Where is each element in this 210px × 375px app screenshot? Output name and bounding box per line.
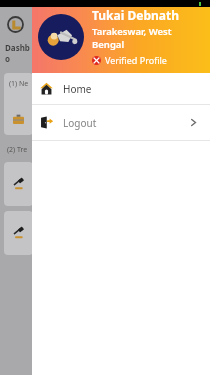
- button[interactable]: Home: [32, 73, 210, 104]
- staticText: Dashbo: [5, 42, 33, 64]
- other: Profile photo: [38, 14, 84, 60]
- staticText: Verified Profile: [105, 54, 167, 66]
- staticText: Tukai Debnath: [92, 7, 179, 23]
- staticText: (1) Ne: [9, 79, 29, 89]
- staticText: Home: [63, 82, 92, 96]
- staticText: Logout: [63, 116, 189, 130]
- button[interactable]: Profile photo: [32, 0, 210, 73]
- staticText: (2) Tre: [7, 145, 28, 155]
- staticText: Tarakeswar, West Bengal: [92, 25, 204, 51]
- button[interactable]: Logout: [32, 105, 210, 140]
